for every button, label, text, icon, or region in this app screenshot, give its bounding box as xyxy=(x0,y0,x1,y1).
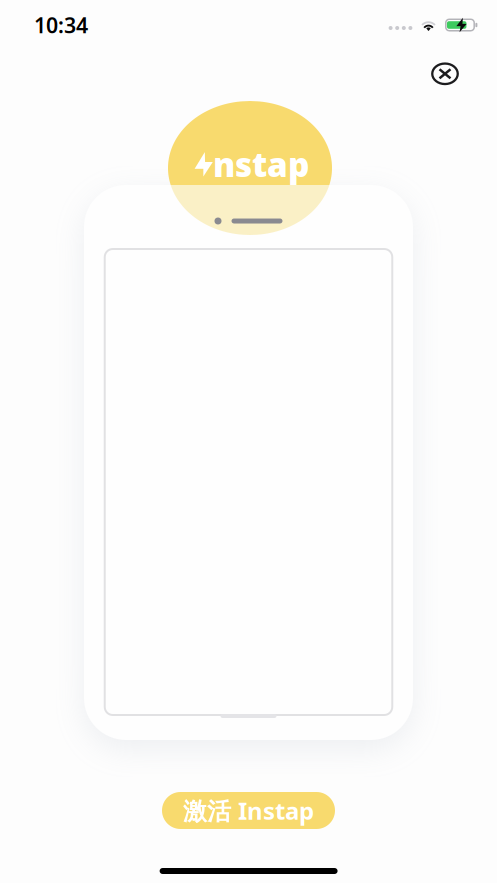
staticText: 10:34 xyxy=(34,11,88,39)
staticText: 激活 Instap xyxy=(183,795,314,826)
button[interactable]: 激活 Instap xyxy=(162,792,335,829)
staticText: nstap xyxy=(213,142,309,186)
button[interactable]: Close xyxy=(423,52,467,96)
